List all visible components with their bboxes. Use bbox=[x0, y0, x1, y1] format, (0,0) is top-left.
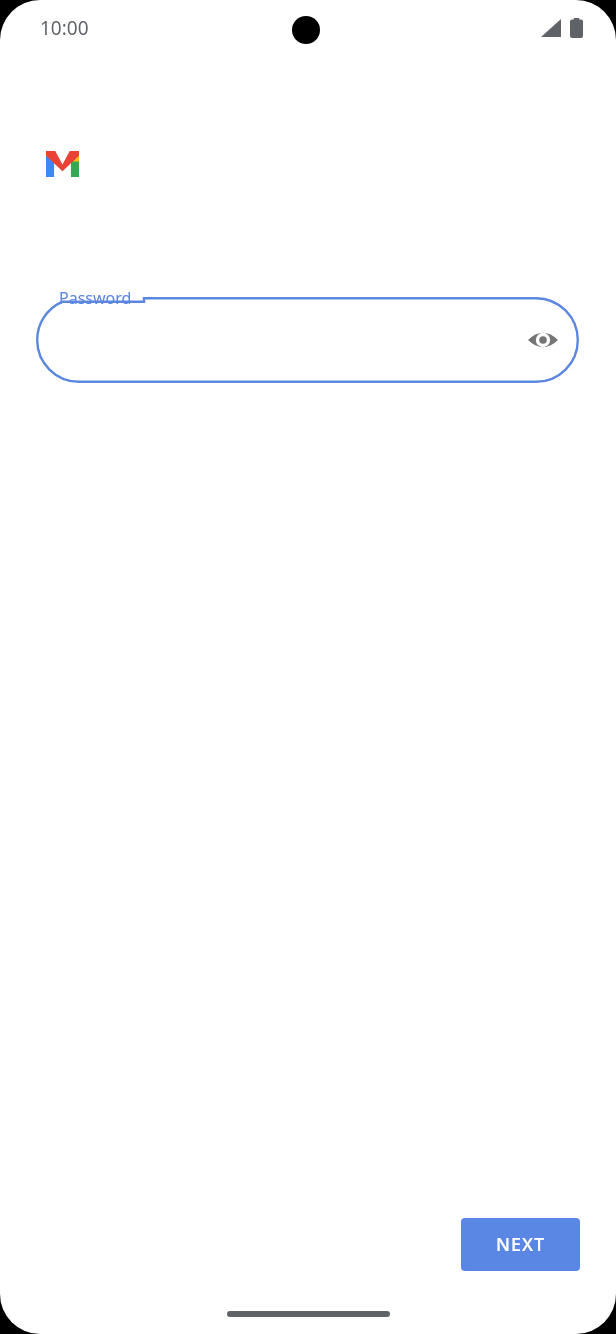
staticText: Password bbox=[59, 287, 132, 309]
staticText: 10:00 bbox=[40, 15, 89, 41]
button[interactable]: Password bbox=[36, 296, 579, 384]
staticText: NEXT bbox=[496, 1232, 546, 1257]
button[interactable]: Show password bbox=[521, 318, 565, 362]
button[interactable]: NEXT bbox=[461, 1218, 580, 1271]
